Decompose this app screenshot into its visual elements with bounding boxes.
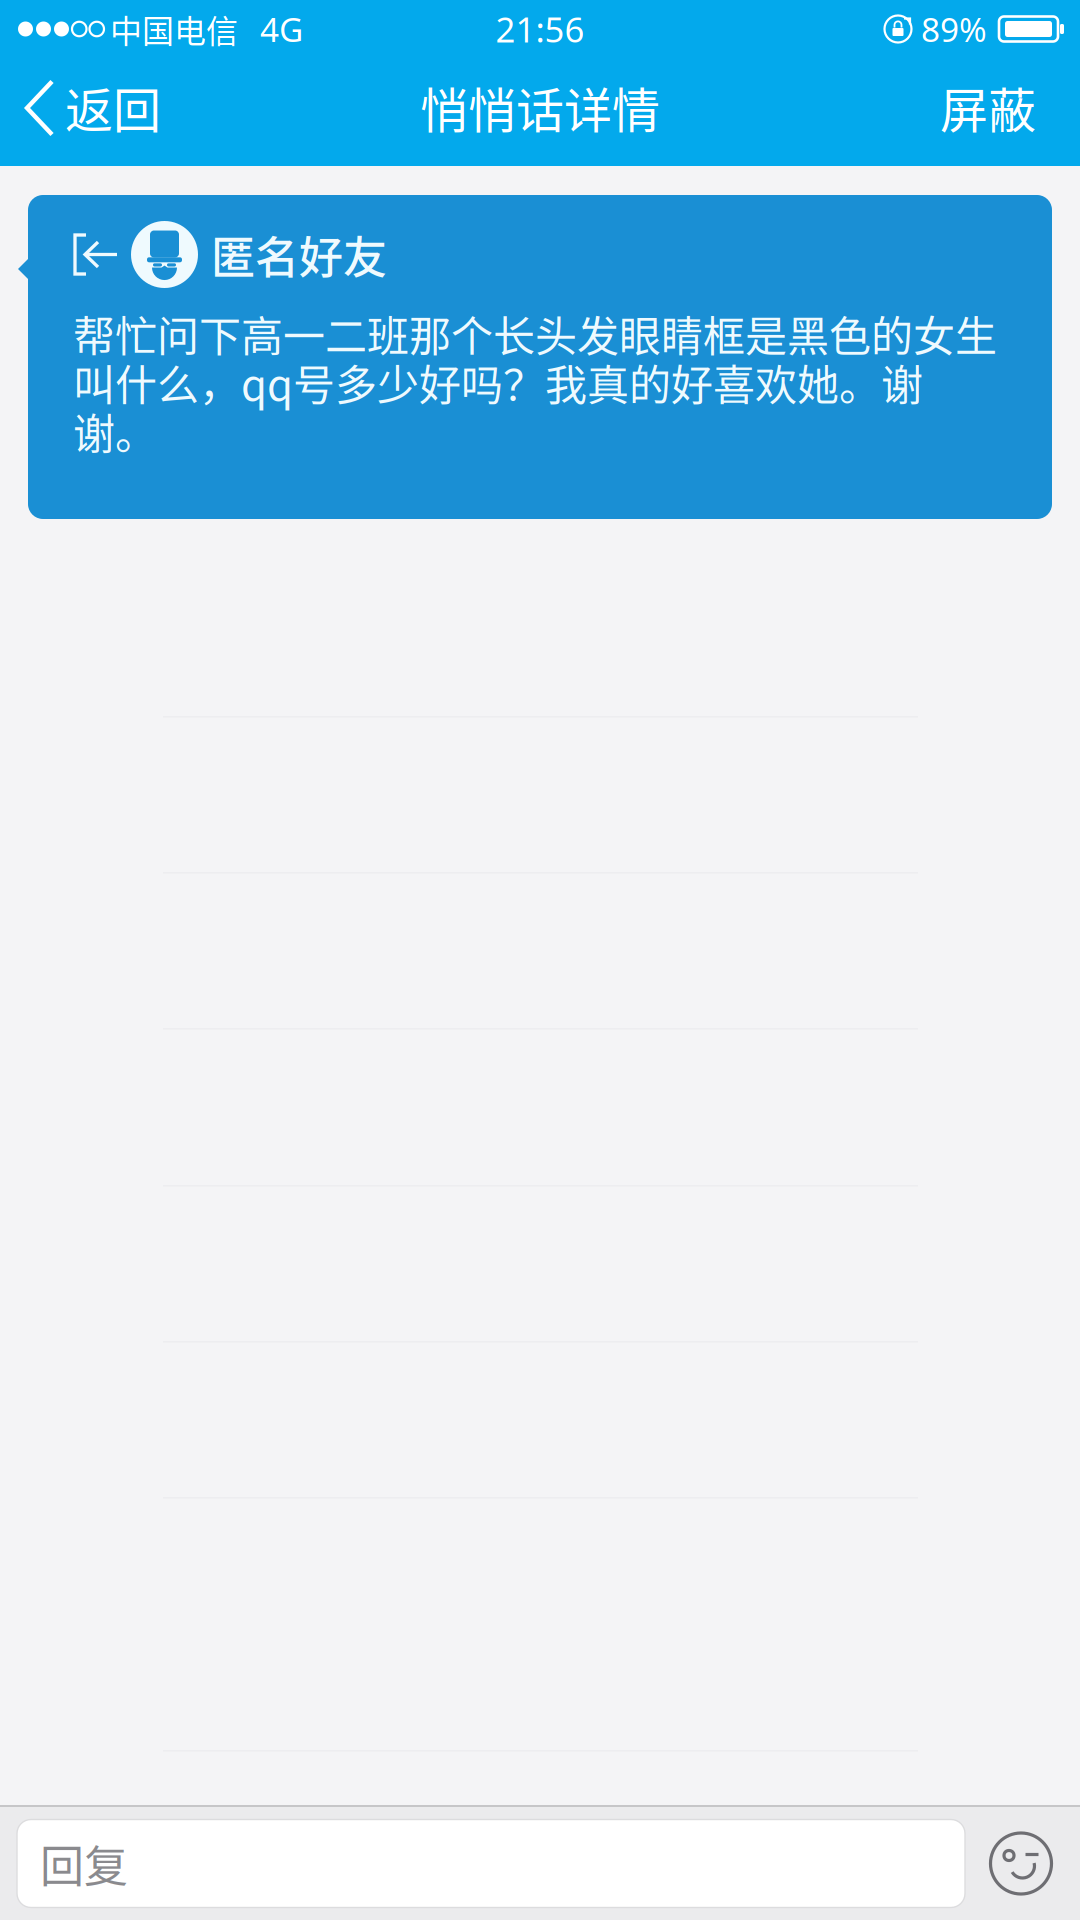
staticText: 匿名好友 (211, 223, 387, 286)
staticText: 返回 (65, 72, 161, 142)
staticText: 21:56 (495, 6, 584, 52)
staticText: 中国电信 (110, 6, 238, 52)
button[interactable]: 返回 (0, 58, 187, 166)
button[interactable]: 屏蔽 (896, 58, 1080, 166)
staticText: 4G (260, 7, 303, 51)
button[interactable]: Emoji (979, 1807, 1063, 1920)
button[interactable]: 回复 (17, 1819, 965, 1907)
staticText: 屏蔽 (940, 72, 1036, 142)
staticText: 悄悄话详情 (420, 72, 660, 142)
staticText: 89% (921, 7, 987, 51)
staticText: 回复 (40, 1832, 128, 1895)
staticText: 帮忙问下高一二班那个长头发眼睛框是黑色的女生叫什么，qq号多少好吗？我真的好喜欢… (73, 303, 997, 461)
